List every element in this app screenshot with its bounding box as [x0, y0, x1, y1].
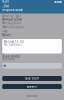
button[interactable]: Save Draft — [2, 76, 62, 81]
staticText: Team Leads — [2, 55, 19, 58]
staticText: All — [4, 65, 5, 67]
staticText: 9:41 — [2, 0, 9, 4]
staticText: Back — [4, 4, 9, 8]
button[interactable]: ‹ — [0, 4, 64, 8]
staticText: SUBMIT — [26, 85, 37, 88]
staticText: Monday 14 Oct — [4, 40, 24, 43]
staticText: No handover — [4, 43, 22, 46]
button[interactable]: SUBMIT — [2, 84, 62, 89]
staticText: ‹ — [2, 3, 3, 9]
staticText: Notes — [2, 33, 10, 37]
staticText: Days — [2, 29, 7, 33]
staticText: Taken this week — [2, 25, 23, 29]
staticText: Selection — [2, 57, 15, 61]
staticText: Annual Leave — [2, 18, 22, 21]
staticText: Save Draft — [25, 77, 39, 80]
staticText: Absence Type — [2, 14, 21, 18]
staticText: Request Leave — [2, 8, 23, 12]
staticText: Weekly Quota — [2, 21, 20, 25]
